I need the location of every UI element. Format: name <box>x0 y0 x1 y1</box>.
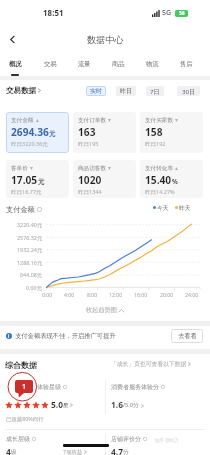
button[interactable]: i <box>6 332 116 340</box>
staticText: /5.0分 <box>123 401 139 409</box>
staticText: 交易数据 <box>6 86 36 95</box>
staticText: 元 <box>49 130 56 138</box>
staticText: 58 <box>179 10 185 17</box>
button[interactable]: 7项权益 <box>63 448 87 455</box>
button[interactable]: 实时 <box>86 86 106 96</box>
button[interactable]: 概况 <box>0 56 30 76</box>
staticText: 24:00 <box>185 291 199 298</box>
staticText: 交易 <box>44 60 57 68</box>
staticText: 4:00 <box>64 291 75 298</box>
staticText: 20:00 <box>160 291 174 298</box>
button[interactable]: 4.7 <box>111 446 129 455</box>
button[interactable]: 支付订单数 <box>73 112 136 153</box>
staticText: 1020 <box>78 173 102 187</box>
button[interactable]: 交易数据 <box>6 86 41 95</box>
staticText: 8:00 <box>87 291 98 298</box>
staticText: 7项权益 <box>63 448 83 455</box>
staticText: 5G <box>162 8 172 18</box>
staticText: 17.05 <box>11 173 38 187</box>
staticText: 昨日195 <box>78 140 99 148</box>
staticText: 店铺评价分 <box>111 435 141 443</box>
button[interactable]: 售后 <box>171 56 201 76</box>
staticText: 0.00元 <box>26 284 43 291</box>
staticText: 15.40 <box>145 173 172 187</box>
button[interactable]: 客单价 <box>6 160 69 198</box>
button[interactable]: 物流 <box>137 56 167 76</box>
staticText: 昨日 <box>120 87 133 95</box>
staticText: 收起趋势图 <box>86 306 117 314</box>
staticText: 支付订单数 <box>78 117 106 124</box>
staticText: 1932.24元 <box>17 246 43 253</box>
button[interactable]: 收起趋势图 <box>86 306 124 314</box>
staticText: 「成长」页也可查看以下数据 <box>111 360 187 367</box>
staticText: 分 <box>123 449 129 455</box>
staticText: 客单价 <box>11 165 28 172</box>
button[interactable]: 商品访客数 <box>73 160 136 198</box>
staticText: 昨日14.27% <box>145 188 175 196</box>
button[interactable]: 支付买家数 <box>140 112 203 153</box>
button[interactable]: 去看看 <box>171 329 203 343</box>
staticText: 支付金额 <box>11 117 34 124</box>
staticText: 2576.32元 <box>17 234 43 241</box>
staticText: 今天 <box>157 204 169 211</box>
staticText: 成长层级 <box>6 435 30 443</box>
staticText: 支付金额表现不佳，开启推广可提升 <box>15 332 116 340</box>
staticText: 昨日3220.36元 <box>11 140 48 148</box>
button[interactable]: 4 <box>6 446 17 455</box>
button[interactable]: 交易 <box>35 56 65 76</box>
staticText: 商品访客数 <box>78 165 106 172</box>
staticText: 昨日16.77元 <box>11 188 42 196</box>
staticText: 30日 <box>182 87 196 95</box>
staticText: 去看看 <box>178 332 197 340</box>
staticText: 1 <box>22 382 27 392</box>
staticText: 消费者服务体验分 <box>111 383 159 391</box>
staticText: 售后 <box>180 60 193 68</box>
staticText: 1288.16元 <box>17 259 43 266</box>
staticText: 4 <box>6 446 11 455</box>
staticText: 元 <box>38 178 45 186</box>
button[interactable]: 1.6 <box>111 399 144 410</box>
staticText: 昨日1344 <box>78 188 102 196</box>
staticText: 概况 <box>9 60 22 68</box>
button[interactable]: 5.0 <box>5 399 73 410</box>
button[interactable]: 支付金额 <box>6 112 69 153</box>
button[interactable]: Back <box>2 29 23 50</box>
staticText: 163 <box>78 125 96 139</box>
staticText: 体验星级 <box>37 383 61 391</box>
staticText: 支付转化率 <box>145 165 173 172</box>
button[interactable]: 7日 <box>146 86 164 96</box>
staticText: % <box>172 177 178 186</box>
staticText: i <box>8 333 10 339</box>
staticText: 16:00 <box>134 291 148 298</box>
staticText: 0:00 <box>42 291 53 298</box>
staticText: 3220.40元 <box>17 221 43 228</box>
button[interactable]: 30日 <box>177 86 200 96</box>
staticText: 星 <box>63 402 69 409</box>
staticText: 综合数据 <box>5 360 37 370</box>
staticText: 644.08元 <box>20 271 43 278</box>
staticText: 物流 <box>146 60 159 68</box>
button[interactable]: 支付转化率 <box>140 160 203 198</box>
staticText: 流量 <box>78 60 91 68</box>
staticText: 支付买家数 <box>145 117 173 124</box>
staticText: 2694.36 <box>11 125 49 139</box>
button[interactable]: 昨日 <box>116 86 136 96</box>
staticText: 支付金额 <box>6 205 35 214</box>
staticText: 昨日192 <box>145 140 166 148</box>
staticText: 5.0 <box>51 399 63 410</box>
button[interactable]: 「成长」页也可查看以下数据 <box>111 360 191 367</box>
button[interactable]: 流量 <box>69 56 99 76</box>
staticText: 级 <box>11 449 17 455</box>
staticText: 昨天 <box>179 204 191 211</box>
staticText: 1.6 <box>111 399 123 410</box>
staticText: 4.7 <box>111 446 123 455</box>
staticText: 数据中心 <box>87 34 124 46</box>
staticText: 知乎 @剑刀 <box>155 437 179 443</box>
staticText: 实时 <box>90 87 103 95</box>
staticText: 18:51 <box>43 7 64 18</box>
staticText: 158 <box>145 125 163 139</box>
staticText: 已超越80%同行 <box>6 415 44 422</box>
staticText: 12:00 <box>109 291 123 298</box>
staticText: 7日 <box>150 87 160 95</box>
button[interactable]: 商品 <box>103 56 133 76</box>
